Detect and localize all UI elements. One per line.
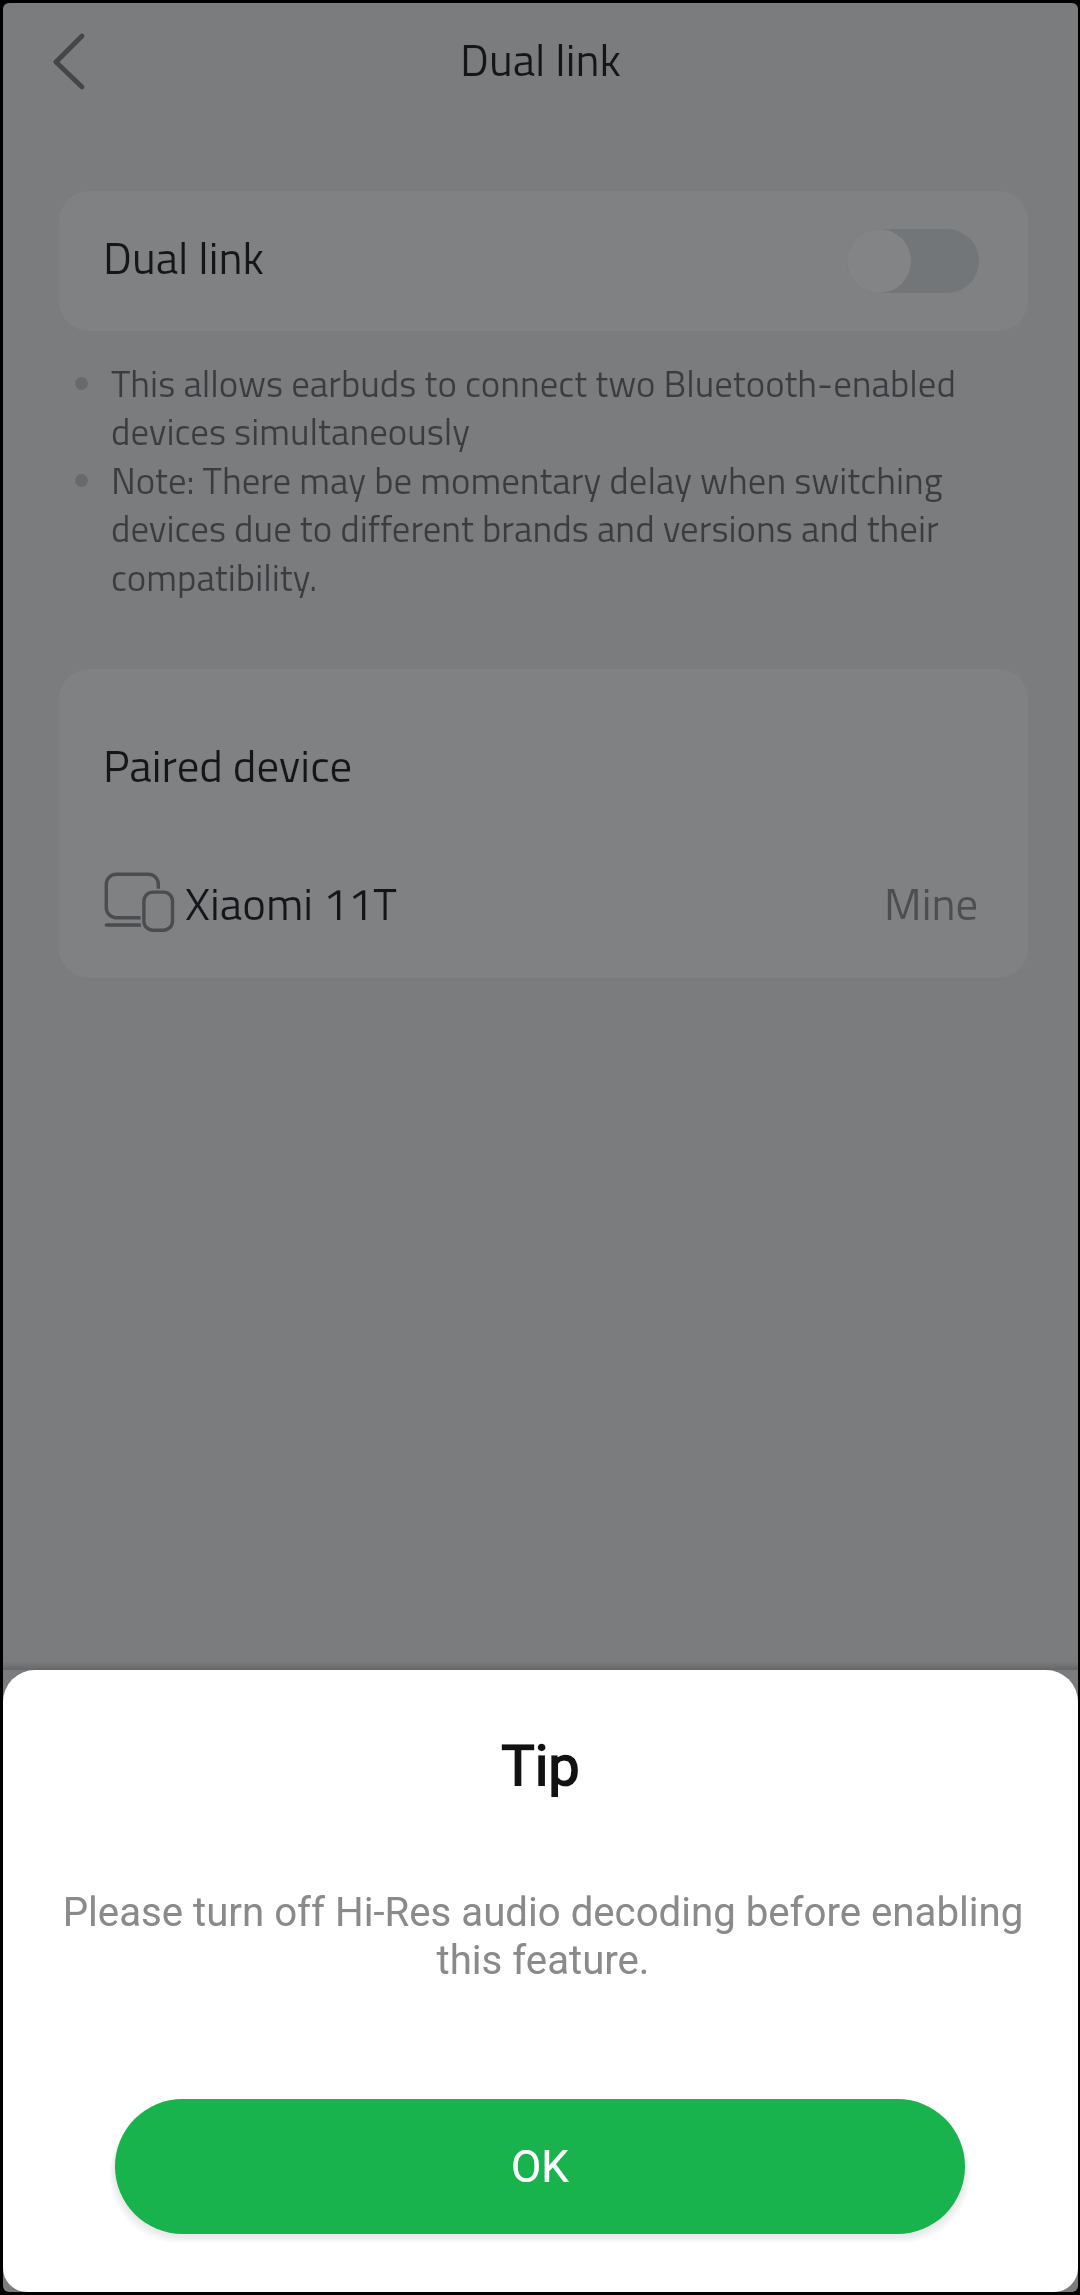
button[interactable]: Dual link switch, off xyxy=(847,229,979,293)
staticText: Paired device xyxy=(103,731,353,799)
staticText: Xiaomi 11T xyxy=(185,869,397,937)
staticText: Mine xyxy=(884,869,979,937)
staticText: Dual link xyxy=(103,223,265,291)
staticText: Note: There may be momentary delay when … xyxy=(111,452,985,598)
staticText: Dual link xyxy=(3,25,1078,93)
button[interactable]: OK xyxy=(115,2099,965,2234)
staticText: This allows earbuds to connect two Bluet… xyxy=(111,355,985,452)
staticText: Please turn off Hi-Res audio decoding be… xyxy=(43,1889,1043,1984)
button[interactable]: Dual link xyxy=(59,191,1028,331)
staticText: OK xyxy=(511,2141,569,2193)
staticText: Tip xyxy=(3,1733,1078,1799)
button[interactable]: Xiaomi 11T xyxy=(59,848,1028,958)
button[interactable]: Back xyxy=(25,18,113,106)
